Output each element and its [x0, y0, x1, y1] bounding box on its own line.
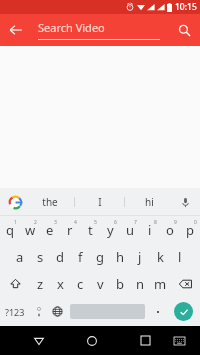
staticText: 5	[94, 219, 97, 226]
button[interactable]: Back	[0, 14, 32, 46]
staticText: g	[96, 248, 104, 266]
button[interactable]: k	[150, 243, 170, 270]
staticText: 10:15	[175, 1, 197, 13]
button[interactable]: h	[110, 243, 130, 270]
button[interactable]: n	[130, 270, 150, 297]
staticText: q	[6, 221, 14, 239]
staticText: p	[186, 221, 194, 239]
button[interactable]: z	[30, 270, 50, 297]
staticText: 3	[54, 219, 57, 226]
button[interactable]: Comma	[29, 297, 48, 326]
button[interactable]: Search	[168, 14, 200, 46]
staticText: n	[136, 275, 145, 293]
staticText: y	[107, 221, 114, 239]
button[interactable]: Google	[4, 191, 26, 213]
button[interactable]: hi	[125, 188, 174, 216]
staticText: x	[57, 275, 64, 293]
staticText: m	[154, 275, 167, 293]
button[interactable]: f	[70, 243, 90, 270]
staticText: z	[37, 275, 44, 293]
staticText: 0	[194, 219, 197, 226]
staticText: the	[42, 195, 58, 209]
button[interactable]: Backspace	[170, 270, 200, 297]
button[interactable]: Shift	[0, 270, 30, 297]
staticText: 7	[134, 219, 137, 226]
button[interactable]: s	[30, 243, 50, 270]
button[interactable]: g	[90, 243, 110, 270]
button[interactable]: Recents	[128, 326, 162, 355]
staticText: w	[25, 221, 36, 239]
button[interactable]: l	[170, 243, 190, 270]
button[interactable]: b	[110, 270, 130, 297]
button[interactable]: 0	[180, 216, 200, 243]
staticText: k	[157, 248, 164, 266]
button[interactable]: 3	[40, 216, 60, 243]
button[interactable]: v	[90, 270, 110, 297]
staticText: b	[116, 275, 124, 293]
staticText: u	[126, 221, 135, 239]
staticText: 8	[154, 219, 157, 226]
staticText: t	[88, 221, 93, 239]
button[interactable]: 2	[20, 216, 40, 243]
staticText: j	[138, 248, 142, 266]
button[interactable]: 4	[60, 216, 80, 243]
button[interactable]: x	[50, 270, 70, 297]
button[interactable]: Period	[148, 297, 167, 326]
button[interactable]: m	[150, 270, 170, 297]
staticText: r	[67, 221, 73, 239]
button[interactable]: d	[50, 243, 70, 270]
staticText: 1	[14, 219, 17, 226]
staticText: i	[148, 221, 152, 239]
button[interactable]: 1	[0, 216, 20, 243]
button[interactable]: j	[130, 243, 150, 270]
staticText: 9	[174, 219, 177, 226]
button[interactable]: Hide keyboard	[22, 326, 56, 355]
button[interactable]: Change language	[48, 297, 67, 326]
button[interactable]: the	[26, 188, 74, 216]
staticText: h	[116, 248, 125, 266]
staticText: e	[46, 221, 54, 239]
button[interactable]: 9	[160, 216, 180, 243]
staticText: f	[78, 248, 83, 266]
staticText: l	[178, 248, 182, 266]
button[interactable]: Enter	[174, 302, 193, 321]
button[interactable]: 6	[100, 216, 120, 243]
staticText: I	[98, 195, 102, 209]
staticText: a	[16, 248, 24, 266]
staticText: ?123	[5, 306, 25, 318]
staticText: s	[37, 248, 44, 266]
staticText: 6	[114, 219, 117, 226]
button[interactable]: a	[10, 243, 30, 270]
staticText: o	[166, 221, 174, 239]
button[interactable]: 7	[120, 216, 140, 243]
staticText: hi	[145, 195, 154, 209]
staticText: c	[77, 275, 84, 293]
button[interactable]: 5	[80, 216, 100, 243]
staticText: Search Video	[38, 20, 105, 35]
button[interactable]: ?123	[0, 297, 29, 326]
staticText: v	[97, 275, 104, 293]
staticText: d	[56, 248, 64, 266]
button[interactable]: Voice input	[174, 191, 196, 213]
staticText: 4	[74, 219, 77, 226]
button[interactable]: Switch keyboard	[162, 326, 196, 355]
button[interactable]: 8	[140, 216, 160, 243]
button[interactable]: c	[70, 270, 90, 297]
staticText: 2	[34, 219, 37, 226]
button[interactable]: I	[75, 188, 124, 216]
button[interactable]: Home	[75, 326, 109, 355]
